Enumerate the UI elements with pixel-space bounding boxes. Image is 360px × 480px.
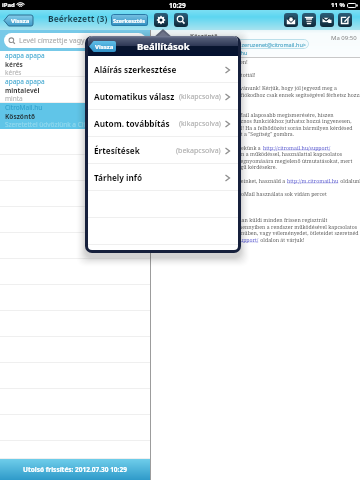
staticText: Címzett: vargagyorgyi@citromail.hu <box>155 49 248 56</box>
staticText: Megköszönjük, hogy minket választottál! <box>155 71 256 78</box>
button[interactable]: Értesítések <box>88 137 238 164</box>
button[interactable]: Levél címzettje vagy tárgya <box>4 33 146 48</box>
button[interactable]: Automatikus válasz <box>88 83 238 110</box>
staticText: CitroMail.hu <box>5 103 43 112</box>
staticText: Autom. továbbítás <box>94 118 170 129</box>
staticText: Ha megosztanád velünk észrevételeinket, … <box>155 177 287 184</box>
staticText: rendszerünkben számos olyan hasznos funk… <box>155 117 352 124</box>
staticText: felhasználónknak. Kérjük, hogy amennyibe… <box>155 223 357 230</box>
staticText: Automatikus válasz <box>94 91 175 102</box>
staticText: CitroMail Rendszerüzenet <rendszeruzenet… <box>156 41 306 48</box>
button[interactable]: Tárhely infó <box>88 164 238 191</box>
staticText: minta <box>5 94 155 103</box>
staticText: apapa apapa <box>5 77 45 86</box>
staticText: Szeretettel üdvözlünk a CitroMailben! <box>5 120 155 129</box>
button[interactable]: http://m.citromail.hu <box>287 177 339 184</box>
staticText: Tárhely infó <box>94 172 143 183</box>
button[interactable]: Vissza <box>4 15 33 26</box>
staticText: kérdésed van, nézd meg a Súgó menüben, v… <box>155 229 359 236</box>
staticText: kérdésed van, a "Segítség" gomb megnyomá… <box>155 157 353 164</box>
staticText: (bekapcsolva) <box>176 146 221 156</box>
staticText: kérés <box>5 68 155 77</box>
staticText: (kikapcsolva) <box>179 92 221 102</box>
button[interactable]: Search <box>174 13 188 27</box>
staticText: megadott jelszavadat, mert a postafiókod… <box>155 91 360 98</box>
staticText: Aláírás szerkesztése <box>94 64 177 75</box>
staticText: Vissza <box>95 43 114 51</box>
staticText: Bármilyen kérdésed van, írhatod nekünk a <box>155 144 263 151</box>
button[interactable]: Autom. továbbítás <box>88 110 238 137</box>
staticText: oldalon át várjuk! <box>259 236 305 243</box>
staticText: Beállítások <box>137 40 190 53</box>
button[interactable]: Delete <box>302 13 316 27</box>
staticText: Levél címzettje vagy tárgya <box>19 36 108 46</box>
staticText: Üdvözlünk a CitroMail rendszerében! <box>155 58 248 65</box>
staticText: A CitroMail rendszere automatikusan küld… <box>155 216 328 223</box>
button[interactable]: apapa apapa <box>0 77 150 103</box>
staticText: Köszöntő <box>5 112 36 121</box>
button[interactable]: CitroMail.hu <box>0 103 150 129</box>
button[interactable]: Settings <box>154 13 168 27</box>
button[interactable]: Reply <box>320 13 334 27</box>
staticText: iPad <box>2 1 15 9</box>
button[interactable]: http://citromail.hu/support/ <box>263 144 331 151</box>
staticText: oldalon keresztül, vagy amennyiben a műk… <box>155 150 343 157</box>
staticText: Fiókod használatához sok sikert kívánunk… <box>155 84 360 91</box>
staticText: Reméljük, elégedett leszel, és a CitroMa… <box>155 190 327 197</box>
button[interactable]: Vissza <box>89 41 116 52</box>
staticText: 10:29 <box>169 1 186 10</box>
staticText: választ kaphatsz általánosabb jellegű ké… <box>155 163 277 170</box>
staticText: Szerkesztés <box>113 17 146 24</box>
staticText: kattints bizalommal az oldalon fent a "S… <box>155 130 295 137</box>
staticText: oldalunkat! <box>339 177 360 184</box>
button[interactable]: Compose <box>338 13 352 27</box>
staticText: Utolsó frissítés: 2012.07.30 10:29 <box>23 465 127 474</box>
staticText: 11 % <box>331 1 345 9</box>
button[interactable]: Szerkesztés <box>111 14 148 26</box>
staticText: Értesítések <box>94 145 140 156</box>
staticText: apapa apapa <box>5 51 45 60</box>
staticText: kérés <box>5 60 23 69</box>
button[interactable]: CitroMail Rendszerüzenet <rendszeruzenet… <box>153 39 309 49</box>
staticText: melyet máshol csak pénzért kapnál! Ha a … <box>155 124 360 131</box>
staticText: Beérkezett (3) <box>48 13 108 25</box>
staticText: Ma 09:50 <box>331 34 357 42</box>
button[interactable]: apapa apapa <box>0 51 150 77</box>
staticText: Vissza <box>11 17 30 25</box>
staticText: Javasoljuk, hogy szánj időt a CitroMail … <box>155 111 334 118</box>
button[interactable]: Archive <box>284 13 298 27</box>
staticText: Köszöntő <box>190 32 218 40</box>
button[interactable]: Aláírás szerkesztése <box>88 56 238 83</box>
button[interactable]: http://citromail.hu/support/ <box>191 236 259 243</box>
staticText: (kikapcsolva) <box>179 119 221 129</box>
staticText: mintalevél <box>5 86 40 95</box>
